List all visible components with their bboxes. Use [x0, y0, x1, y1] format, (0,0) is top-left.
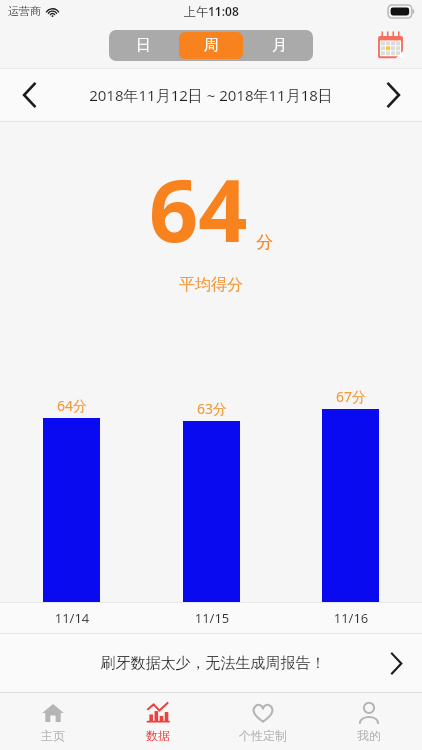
- button[interactable]: 日: [111, 32, 175, 59]
- staticText: 64: [149, 150, 248, 267]
- staticText: 上午11:08: [184, 3, 239, 19]
- button[interactable]: 数据: [105, 693, 210, 750]
- button[interactable]: 个性定制: [210, 693, 316, 750]
- staticText: 周: [204, 36, 219, 55]
- staticText: 11/16: [324, 609, 378, 627]
- staticText: 数据: [146, 728, 170, 743]
- button[interactable]: 主页: [0, 693, 105, 750]
- button[interactable]: 周: [179, 32, 243, 59]
- staticText: 分: [256, 232, 273, 253]
- button[interactable]: Previous week: [0, 69, 58, 121]
- button[interactable]: 刷牙数据太少，无法生成周报告！: [0, 634, 422, 692]
- button[interactable]: 月: [247, 32, 311, 59]
- staticText: 主页: [41, 728, 65, 743]
- staticText: 2018年11月12日 ~ 2018年11月18日: [58, 85, 364, 105]
- staticText: 63分: [190, 399, 234, 418]
- staticText: 日: [136, 36, 151, 55]
- staticText: 11/15: [185, 609, 239, 627]
- button[interactable]: 我的: [316, 693, 422, 750]
- staticText: 月: [272, 36, 287, 55]
- staticText: 刷牙数据太少，无法生成周报告！: [56, 654, 370, 673]
- staticText: 运营商: [8, 4, 41, 18]
- button[interactable]: Calendar: [372, 27, 408, 63]
- staticText: 11/14: [45, 609, 99, 627]
- staticText: 67分: [329, 387, 373, 406]
- staticText: 我的: [357, 728, 381, 743]
- button[interactable]: Next week: [364, 69, 422, 121]
- staticText: 64分: [50, 396, 94, 415]
- staticText: 平均得分: [179, 275, 243, 295]
- staticText: 个性定制: [239, 728, 287, 743]
